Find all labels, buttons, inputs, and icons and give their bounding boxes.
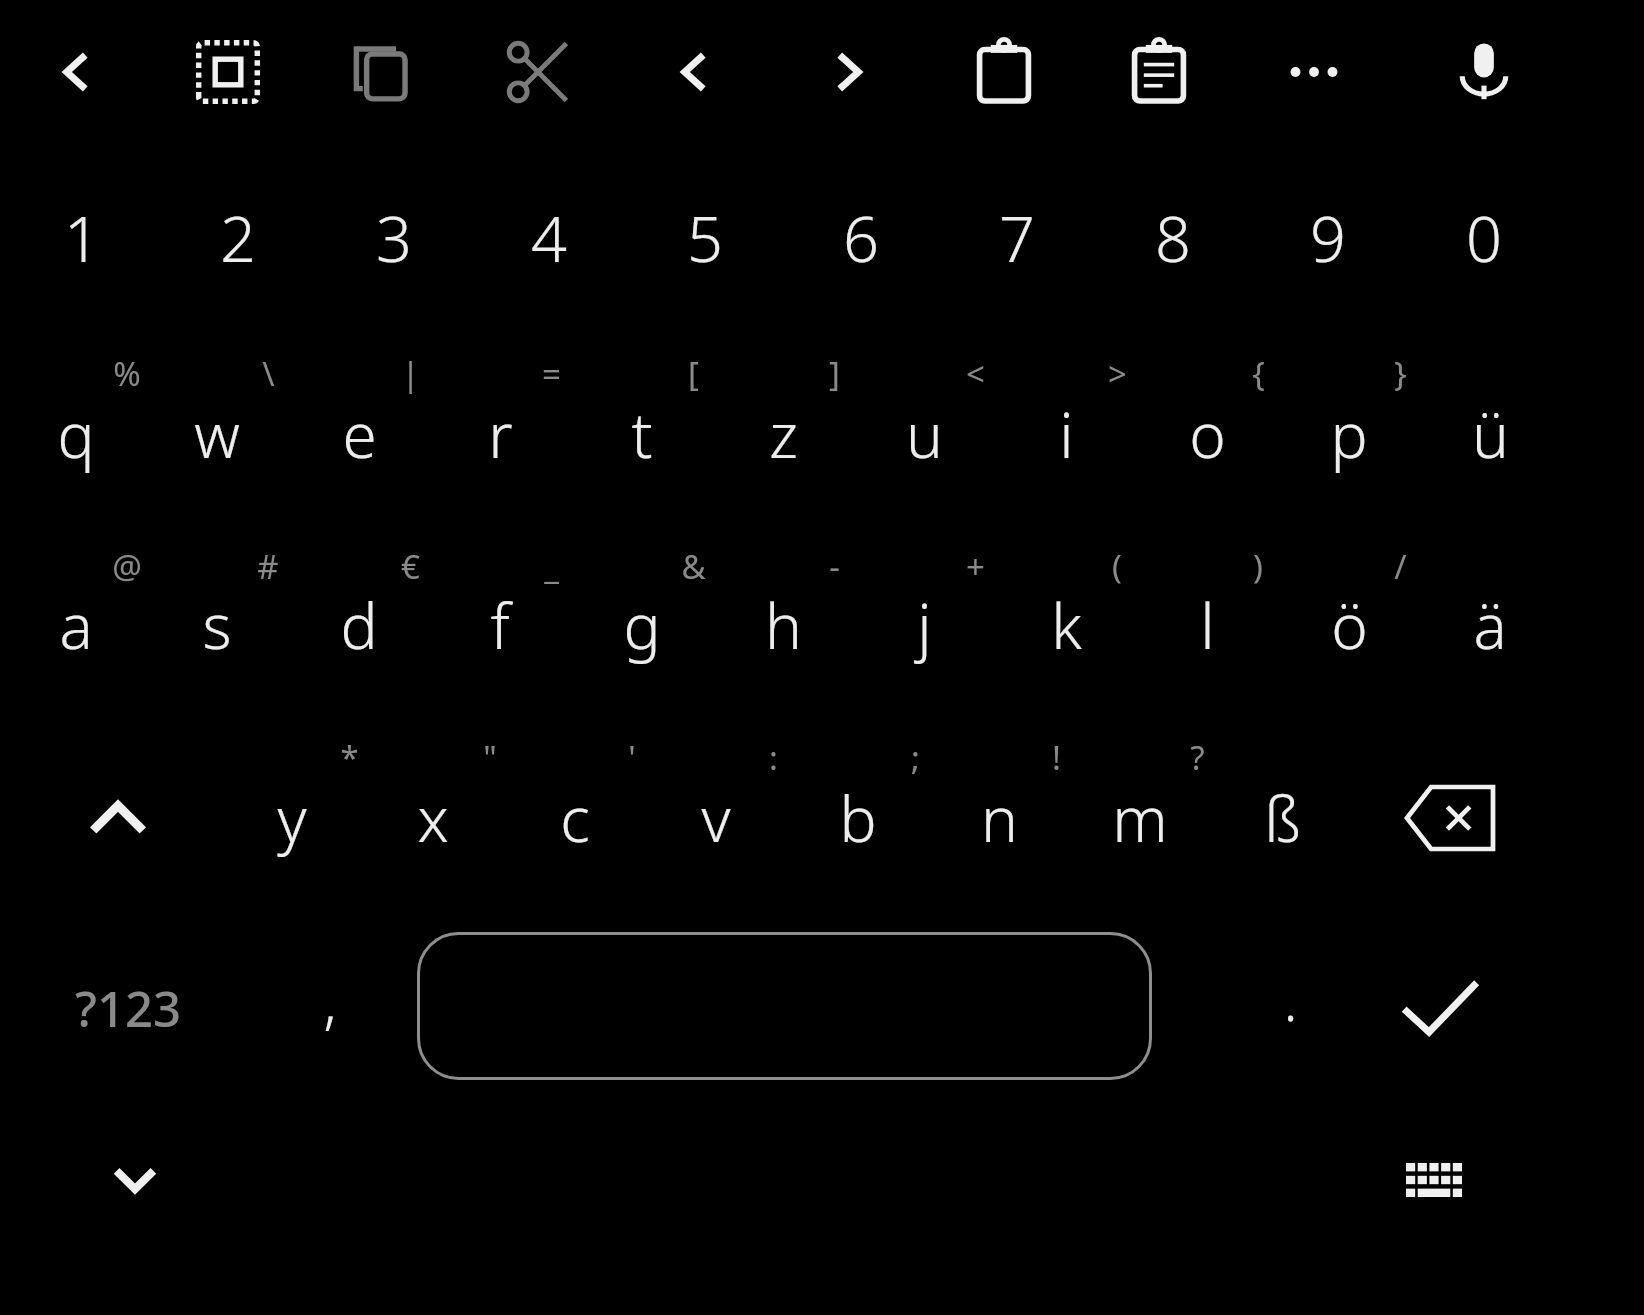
staticText: € [401,544,420,589]
button[interactable]: . [1215,923,1365,1073]
staticText: & [681,544,706,589]
button[interactable] [223,708,361,888]
staticText: r [488,392,513,476]
button[interactable] [148,515,286,695]
button[interactable] [714,515,852,695]
button[interactable]: Back [18,14,134,130]
button[interactable] [431,515,569,695]
button[interactable]: 9 [1255,168,1401,308]
staticText: 4 [531,195,567,281]
staticText: 0 [1466,195,1502,281]
button[interactable]: Cut [480,14,596,130]
button[interactable] [290,324,428,504]
button[interactable]: Paste [946,14,1062,130]
staticText: > [1108,351,1127,396]
staticText: m [1112,776,1168,860]
button[interactable] [7,515,145,695]
staticText: a [59,583,93,667]
staticText: , [323,961,337,1040]
button[interactable] [647,708,785,888]
staticText: c [560,776,590,860]
staticText: ? [1190,735,1205,780]
staticText: ! [1052,735,1061,780]
staticText: @ [112,544,142,589]
button[interactable] [364,708,502,888]
button[interactable] [714,324,852,504]
button[interactable]: 0 [1411,168,1557,308]
staticText: j [917,583,932,667]
button[interactable] [997,324,1135,504]
button[interactable]: 5 [632,168,778,308]
staticText: } [1394,351,1407,396]
button[interactable]: More options [1256,14,1372,130]
button[interactable]: 4 [476,168,622,308]
button[interactable]: 8 [1100,168,1246,308]
button[interactable] [1138,324,1276,504]
staticText: f [490,583,510,667]
button[interactable] [1213,708,1351,888]
staticText: 6 [843,195,879,281]
button[interactable] [930,708,1068,888]
button[interactable] [1421,515,1559,695]
button[interactable]: Move cursor left [636,14,752,130]
button[interactable] [431,324,569,504]
button[interactable]: Clipboard [1101,14,1217,130]
button[interactable] [1421,324,1559,504]
button[interactable] [855,324,993,504]
button[interactable] [1280,515,1418,695]
button[interactable] [290,515,428,695]
button[interactable]: 3 [321,168,467,308]
button[interactable]: Space [417,932,1152,1080]
staticText: 1 [64,195,100,281]
staticText: l [1200,583,1215,667]
button[interactable] [148,324,286,504]
staticText: t [631,392,653,476]
button[interactable] [1071,708,1209,888]
staticText: " [483,735,497,780]
staticText: 8 [1155,195,1191,281]
staticText: x [417,776,449,860]
staticText: 3 [376,195,412,281]
button[interactable]: Move cursor right [791,14,907,130]
button[interactable]: Voice input [1426,14,1542,130]
button[interactable]: 7 [944,168,1090,308]
staticText: [ [688,351,699,396]
staticText: d [340,583,378,667]
staticText: z [769,392,798,476]
button[interactable]: Hide keyboard [75,1125,195,1235]
button[interactable] [506,708,644,888]
staticText: q [57,392,95,476]
button[interactable]: Shift [43,743,193,893]
staticText: y [277,776,307,860]
button[interactable]: 1 [9,168,155,308]
staticText: < [966,351,985,396]
button[interactable]: Enter [1350,933,1530,1083]
staticText: ß [1264,776,1301,860]
staticText: { [1252,351,1265,396]
button[interactable] [855,515,993,695]
staticText: w [194,392,240,476]
button[interactable]: ?123 [13,933,243,1083]
staticText: p [1330,392,1368,476]
staticText: b [839,776,877,860]
staticText: 7 [999,195,1035,281]
button[interactable] [573,324,711,504]
staticText: | [401,351,420,396]
button[interactable] [789,708,927,888]
button[interactable]: , [255,925,405,1075]
button[interactable]: Switch keyboard [1374,1125,1494,1235]
staticText: ä [1473,583,1507,667]
button[interactable] [997,515,1135,695]
button[interactable] [573,515,711,695]
button[interactable]: Select all [170,14,286,130]
button[interactable]: Copy [324,14,440,130]
button[interactable] [1280,324,1418,504]
button[interactable] [7,324,145,504]
button[interactable]: 2 [165,168,311,308]
staticText: ] [829,351,840,396]
button[interactable] [1138,515,1276,695]
staticText: n [981,776,1018,860]
button[interactable]: 6 [788,168,934,308]
staticText: ?123 [75,975,181,1042]
button[interactable]: Backspace [1365,743,1535,893]
